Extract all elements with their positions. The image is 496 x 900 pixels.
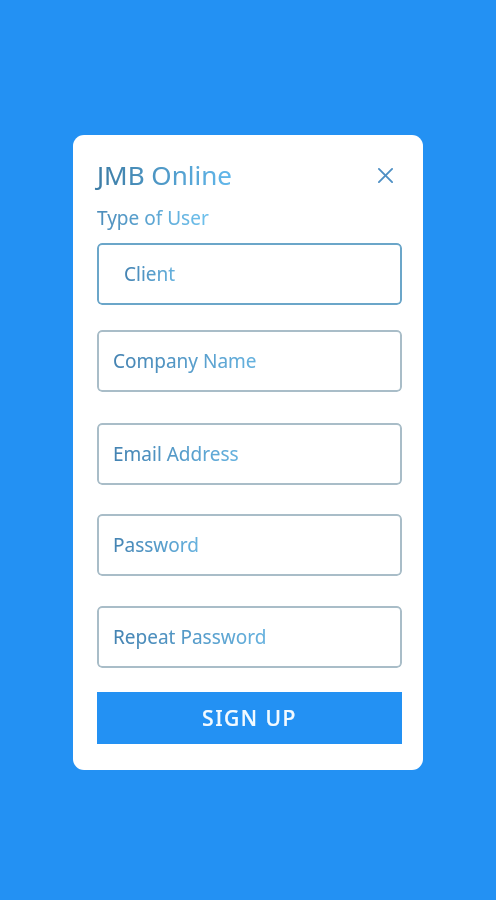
staticText: Email Address: [113, 441, 239, 467]
staticText: Company Name: [113, 348, 257, 374]
button[interactable]: SIGN UP: [97, 692, 402, 744]
staticText: Type of User: [97, 205, 209, 231]
button[interactable]: Client: [97, 243, 402, 305]
button[interactable]: Repeat Password: [97, 606, 402, 668]
button[interactable]: Password: [97, 514, 402, 576]
staticText: SIGN UP: [202, 704, 297, 733]
staticText: Client: [124, 261, 176, 287]
button[interactable]: Close: [368, 158, 402, 192]
button[interactable]: Company Name: [97, 330, 402, 392]
staticText: Repeat Password: [113, 624, 267, 650]
staticText: JMB Online: [97, 157, 232, 192]
button[interactable]: Email Address: [97, 423, 402, 485]
staticText: Password: [113, 532, 199, 558]
